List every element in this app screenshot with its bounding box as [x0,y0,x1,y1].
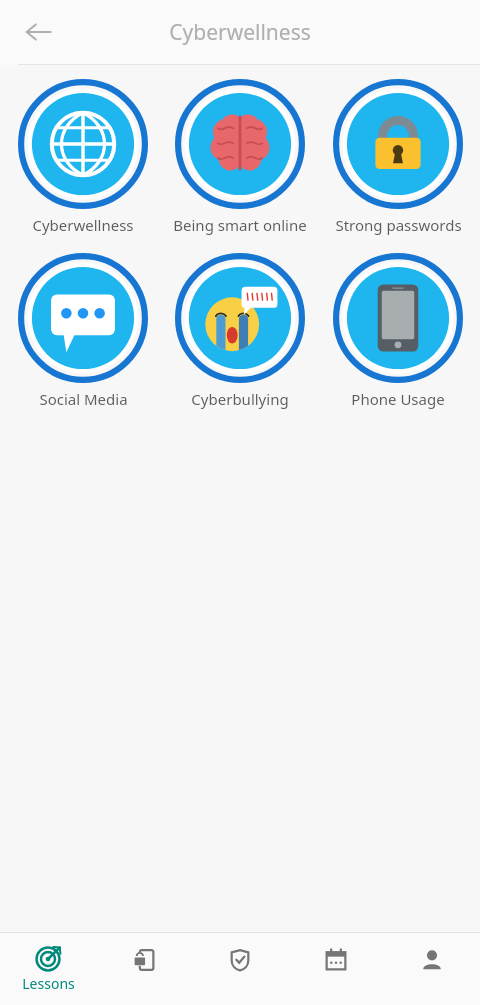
button[interactable]: Device lock [96,933,192,1005]
staticText: Social Media [39,389,128,409]
button[interactable]: Being smart online [165,79,315,235]
staticText: Lessons [22,974,75,993]
button[interactable]: Profile [384,933,480,1005]
button[interactable]: Strong passwords [323,79,473,235]
button[interactable]: Phone Usage [323,253,473,409]
button[interactable]: Lessons [0,933,96,1005]
staticText: Cyberbullying [191,389,289,409]
button[interactable]: Social Media [8,253,158,409]
button[interactable]: Schedule [288,933,384,1005]
button[interactable]: Back [14,8,62,56]
button[interactable]: Protection [192,933,288,1005]
staticText: Cyberwellness [32,215,134,235]
staticText: Cyberwellness [169,18,311,47]
staticText: Strong passwords [335,215,462,235]
button[interactable]: Cyberwellness [8,79,158,235]
staticText: Being smart online [173,215,307,235]
staticText: Phone Usage [351,389,445,409]
button[interactable]: Cyberbullying [165,253,315,409]
